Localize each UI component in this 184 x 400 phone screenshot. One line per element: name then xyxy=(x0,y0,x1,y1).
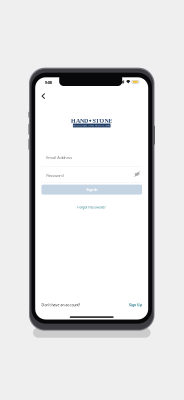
staticText: Sign In xyxy=(86,187,97,192)
button[interactable]: Back xyxy=(38,90,48,102)
staticText: Email Address xyxy=(46,155,72,160)
staticText: 9:08 xyxy=(45,80,52,85)
button[interactable]: Forgot Password? xyxy=(35,204,148,210)
staticText: MASSAGE AND FACIAL SPA xyxy=(73,124,110,127)
staticText: HAND xyxy=(71,117,88,124)
button[interactable]: Sign In xyxy=(41,185,142,195)
staticText: Sign Up xyxy=(129,303,142,307)
staticText: Don't have an account? xyxy=(41,303,80,307)
button[interactable]: Sign Up xyxy=(129,303,142,307)
staticText: Forgot Password? xyxy=(77,205,106,210)
staticText: STONE xyxy=(92,117,112,124)
staticText: Password xyxy=(46,173,63,178)
